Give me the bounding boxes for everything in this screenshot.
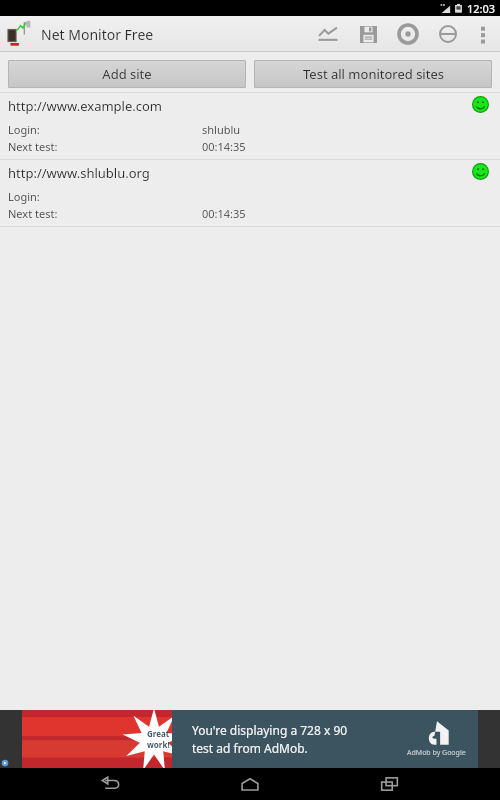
staticText: Test all monitored sites xyxy=(303,65,444,83)
staticText: You're displaying a 728 x 90 xyxy=(192,722,348,738)
staticText: Great xyxy=(147,728,170,739)
button[interactable]: Recent apps xyxy=(361,768,417,800)
button[interactable]: Test all monitored sites xyxy=(254,60,492,88)
button[interactable]: Statistics chart xyxy=(308,16,348,52)
staticText: Login: xyxy=(8,122,202,137)
staticText: 00:14:35 xyxy=(202,139,246,154)
button[interactable]: Back xyxy=(83,768,139,800)
staticText: Add site xyxy=(102,65,152,83)
staticText: Next test: xyxy=(8,139,202,154)
button[interactable]: http://www.example.com xyxy=(0,92,500,159)
button[interactable]: Add site xyxy=(8,60,246,88)
staticText: test ad from AdMob. xyxy=(192,740,308,756)
staticText: Net Monitor Free xyxy=(41,25,154,44)
button[interactable]: Advertisement xyxy=(0,710,500,768)
staticText: shlublu xyxy=(202,122,241,137)
staticText: http://www.shlublu.org xyxy=(8,164,150,182)
staticText: 12:03 xyxy=(467,1,496,16)
staticText: 00:14:35 xyxy=(202,206,246,221)
button[interactable]: Monitor settings xyxy=(388,16,428,52)
button[interactable]: http://www.shlublu.org xyxy=(0,159,500,226)
staticText: work! xyxy=(147,739,170,750)
button[interactable]: Save xyxy=(348,16,388,52)
button[interactable]: More options xyxy=(468,16,498,52)
staticText: Login: xyxy=(8,189,202,204)
staticText: http://www.example.com xyxy=(8,97,163,115)
button[interactable]: Disable monitoring xyxy=(428,16,468,52)
staticText: AdMob by Google xyxy=(407,748,466,758)
button[interactable]: Home xyxy=(222,768,278,800)
staticText: Next test: xyxy=(8,206,202,221)
